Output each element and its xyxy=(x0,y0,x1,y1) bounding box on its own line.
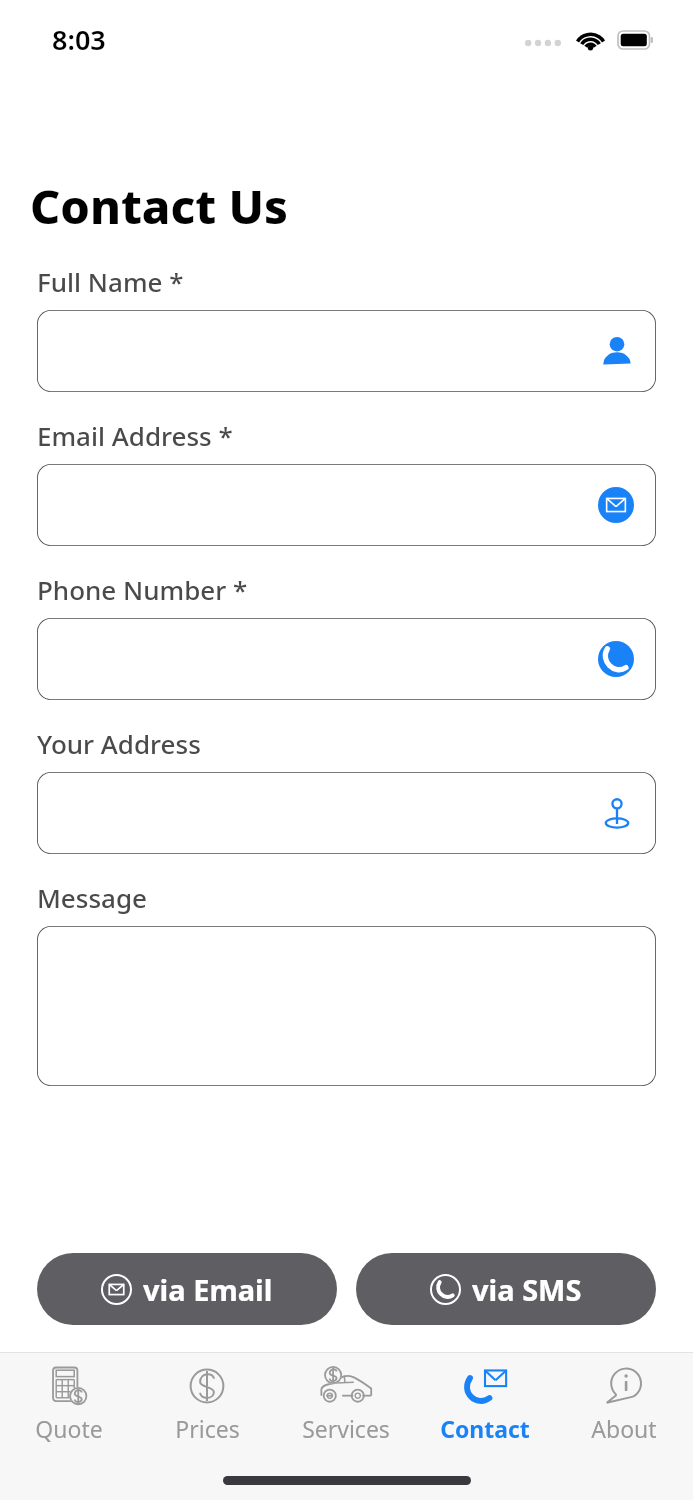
staticText: Contact xyxy=(440,1413,530,1444)
staticText: Prices xyxy=(175,1413,240,1444)
staticText: Your Address xyxy=(37,726,201,761)
staticText: via SMS xyxy=(472,1270,582,1309)
button[interactable]: Prices xyxy=(138,1353,276,1455)
staticText: Phone Number * xyxy=(37,572,248,607)
staticText: About xyxy=(591,1413,657,1444)
button[interactable]: Services xyxy=(276,1353,415,1455)
staticText: Email Address * xyxy=(37,418,233,453)
other: Email field xyxy=(598,487,634,523)
staticText: via Email xyxy=(143,1270,273,1309)
button[interactable]: via Email xyxy=(37,1253,337,1325)
staticText: Message xyxy=(37,880,147,915)
other: Address field xyxy=(600,796,634,830)
button[interactable]: About xyxy=(554,1353,693,1455)
staticText: Full Name * xyxy=(37,264,184,299)
other: Prices xyxy=(186,1365,228,1407)
other: About xyxy=(603,1365,645,1407)
staticText: Contact Us xyxy=(30,174,288,238)
other: Phone field xyxy=(598,641,634,677)
button[interactable]: Phone field xyxy=(37,618,656,700)
other: Services xyxy=(318,1365,374,1407)
other: Quote xyxy=(48,1365,90,1407)
other: Contact xyxy=(461,1365,509,1407)
button[interactable] xyxy=(37,926,656,1086)
staticText: Services xyxy=(302,1413,390,1444)
button[interactable]: Email field xyxy=(37,464,656,546)
button[interactable]: Quote xyxy=(0,1353,138,1455)
other: Name field xyxy=(600,334,634,368)
staticText: Quote xyxy=(35,1413,103,1444)
button[interactable]: Address field xyxy=(37,772,656,854)
button[interactable]: Contact xyxy=(415,1353,554,1455)
button[interactable]: Name field xyxy=(37,310,656,392)
staticText: 8:03 xyxy=(52,21,106,58)
button[interactable]: via SMS xyxy=(356,1253,656,1325)
